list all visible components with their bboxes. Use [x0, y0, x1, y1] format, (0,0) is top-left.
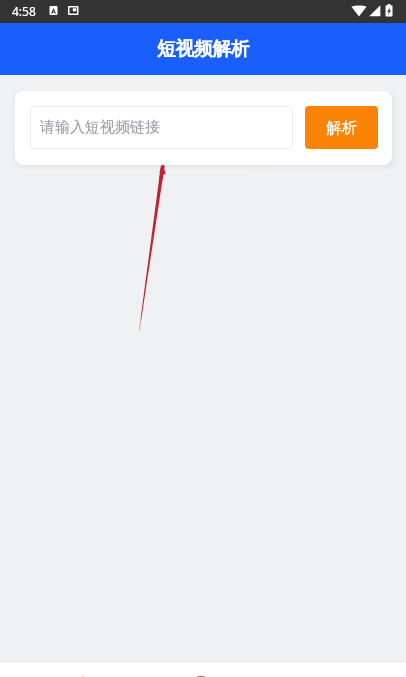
- button[interactable]: 请输入短视频链接: [30, 106, 293, 149]
- staticText: 请输入短视频链接: [40, 118, 160, 137]
- button[interactable]: 解析: [305, 106, 378, 149]
- staticText: 4:58: [12, 3, 36, 19]
- button[interactable]: Home: [136, 663, 271, 677]
- staticText: 解析: [326, 118, 357, 138]
- staticText: 短视频解析: [157, 37, 250, 60]
